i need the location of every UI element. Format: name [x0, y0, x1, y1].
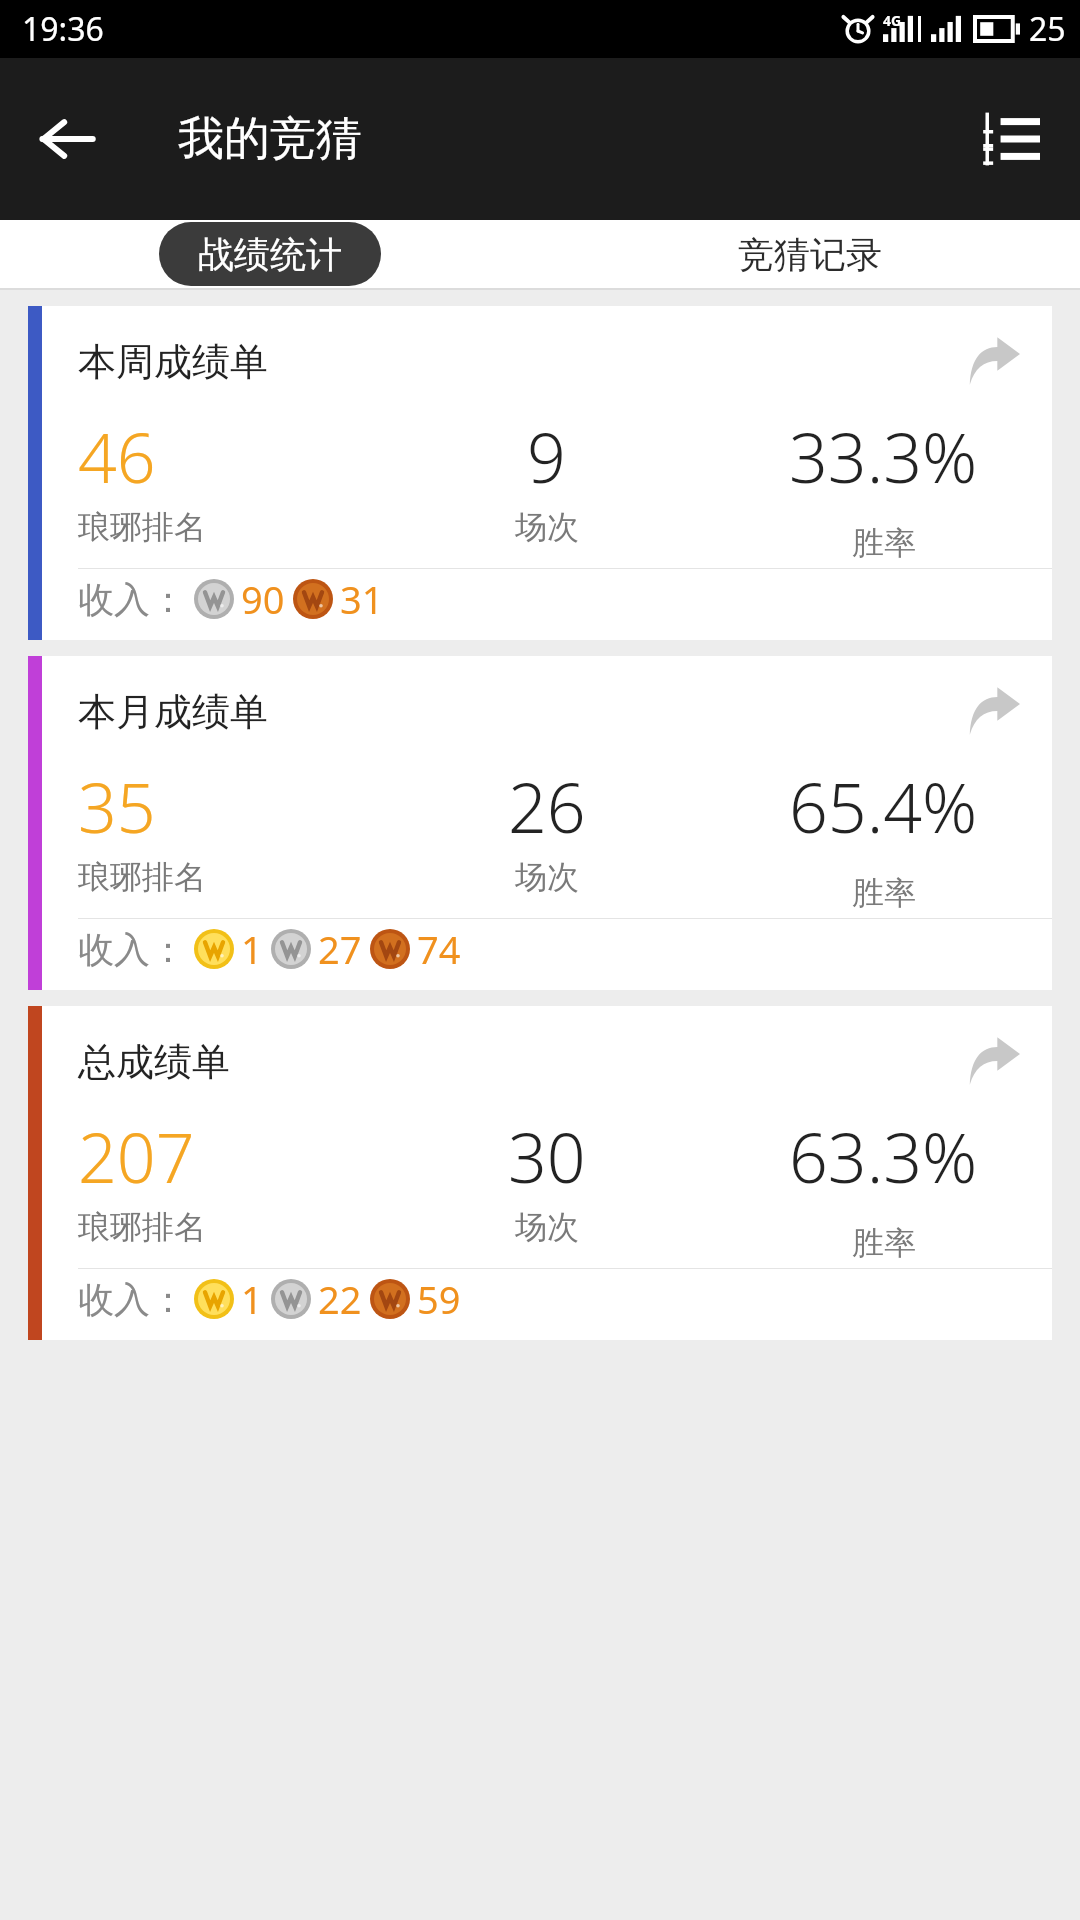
staticText: 战绩统计	[198, 232, 342, 277]
button[interactable]: Share	[954, 322, 1032, 400]
button[interactable]: 总成绩单	[28, 1006, 1052, 1340]
staticText: 胜率	[852, 523, 916, 563]
staticText: 场次	[515, 1207, 579, 1247]
staticText: 1	[241, 923, 263, 975]
button[interactable]: 战绩统计	[159, 222, 381, 286]
staticText: 90	[241, 573, 285, 625]
staticText: 26	[508, 760, 586, 853]
staticText: 25	[1029, 7, 1066, 51]
staticText: 胜率	[852, 1223, 916, 1263]
button[interactable]: Ranking list	[966, 94, 1056, 184]
button[interactable]: Back	[26, 98, 108, 180]
staticText: 22	[318, 1273, 362, 1325]
staticText: 琅琊排名	[78, 507, 206, 547]
staticText: 35	[78, 760, 156, 853]
button[interactable]: 本周成绩单	[28, 306, 1052, 640]
staticText: 31	[340, 573, 384, 625]
staticText: 本周成绩单	[78, 338, 268, 386]
staticText: 琅琊排名	[78, 857, 206, 897]
staticText: 琅琊排名	[78, 1207, 206, 1247]
staticText: 竞猜记录	[738, 232, 882, 277]
staticText: 59	[417, 1273, 461, 1325]
staticText: 9	[527, 410, 566, 503]
staticText: 33.3%	[789, 410, 978, 503]
staticText: 65.4%	[789, 760, 978, 853]
staticText: 207	[78, 1110, 195, 1203]
staticText: 4G	[883, 11, 902, 30]
staticText: 收入：	[78, 927, 186, 972]
staticText: 30	[508, 1110, 586, 1203]
staticText: 1	[241, 1273, 263, 1325]
staticText: 胜率	[852, 873, 916, 913]
button[interactable]: Share	[954, 1022, 1032, 1100]
staticText: 收入：	[78, 577, 186, 622]
staticText: 场次	[515, 857, 579, 897]
staticText: 19:36	[22, 7, 104, 51]
staticText: 总成绩单	[78, 1038, 230, 1086]
staticText: 74	[417, 923, 461, 975]
staticText: 27	[318, 923, 362, 975]
button[interactable]: 本月成绩单	[28, 656, 1052, 990]
button[interactable]: Share	[954, 672, 1032, 750]
staticText: 我的竞猜	[178, 110, 362, 168]
staticText: 63.3%	[789, 1110, 978, 1203]
button[interactable]: 竞猜记录	[699, 222, 921, 286]
staticText: 46	[78, 410, 156, 503]
staticText: 本月成绩单	[78, 688, 268, 736]
staticText: 收入：	[78, 1277, 186, 1322]
staticText: 场次	[515, 507, 579, 547]
